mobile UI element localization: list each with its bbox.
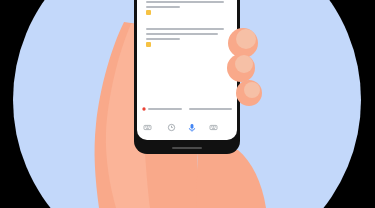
button[interactable]: Keyboard [142,122,152,132]
button[interactable] [141,24,233,51]
button[interactable] [140,104,184,113]
button[interactable]: Keyboard input [208,122,218,132]
button[interactable]: History [166,122,176,132]
button[interactable]: Microphone [186,122,197,133]
button[interactable] [141,0,233,19]
button[interactable] [187,104,234,113]
